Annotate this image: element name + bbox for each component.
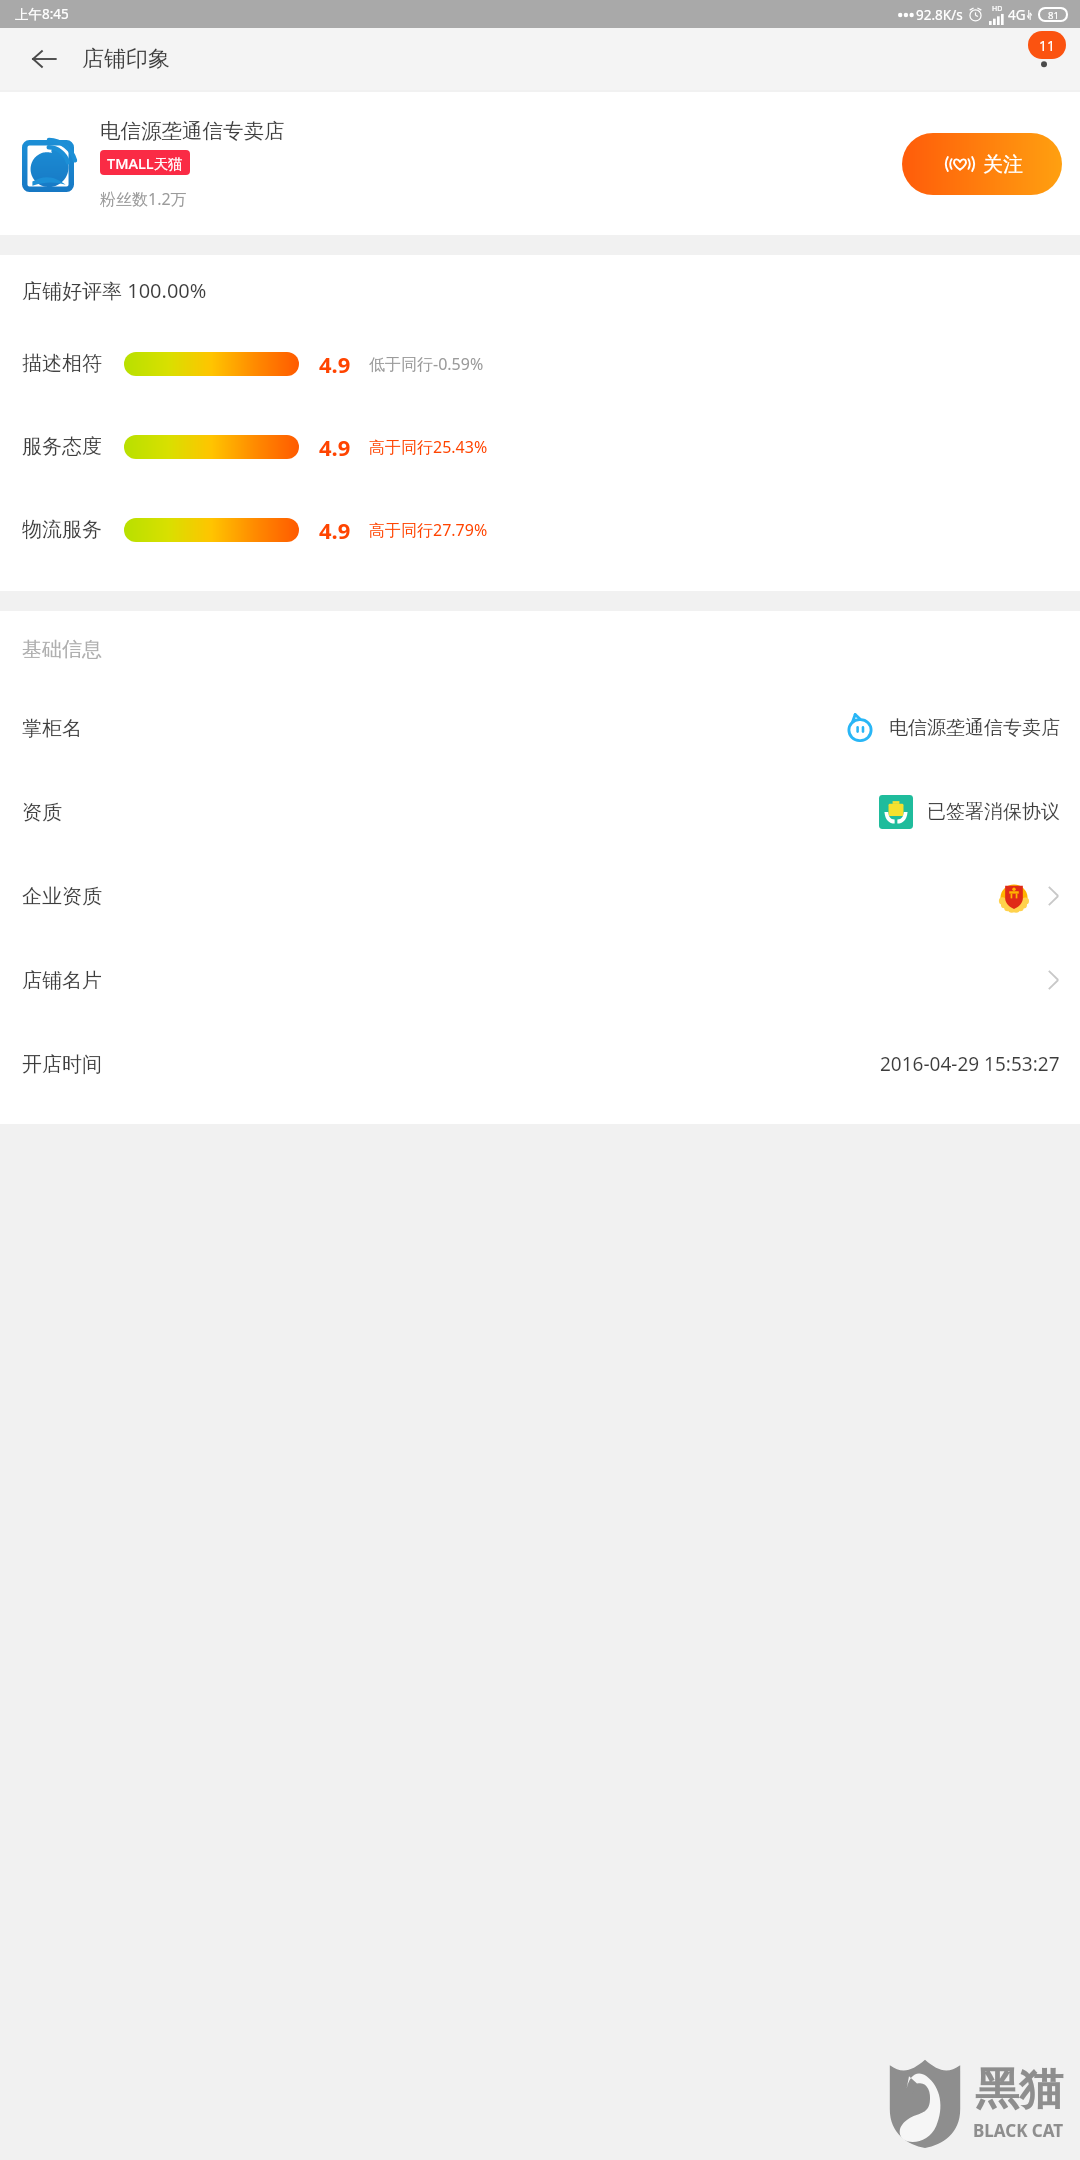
button[interactable]: 企业资质 <box>0 854 1080 938</box>
staticText: 店铺印象 <box>82 45 170 73</box>
staticText: BLACK CAT <box>973 2119 1064 2142</box>
staticText: 店铺好评率 100.00% <box>22 277 207 304</box>
staticText: TMALL天猫 <box>107 153 183 173</box>
staticText: 黑猫 <box>975 2062 1063 2117</box>
staticText: 4.9 <box>319 432 351 462</box>
staticText: 店铺名片 <box>22 968 102 993</box>
staticText: 4.9 <box>319 515 351 545</box>
staticText: 掌柜名 <box>22 716 82 741</box>
staticText: 物流服务 <box>22 517 102 542</box>
staticText: 描述相符 <box>22 351 102 376</box>
button[interactable]: 店铺名片 <box>0 938 1080 1022</box>
staticText: 4.9 <box>319 349 351 379</box>
button[interactable]: 描述相符 <box>0 322 1080 405</box>
button[interactable]: 关注 <box>902 133 1062 195</box>
staticText: 11 <box>1039 36 1056 55</box>
button[interactable]: 掌柜名 <box>0 686 1080 770</box>
staticText: 粉丝数1.2万 <box>100 188 187 210</box>
button[interactable]: 资质 <box>0 770 1080 854</box>
staticText: 已签署消保协议 <box>927 800 1060 824</box>
staticText: 高于同行25.43% <box>369 436 488 458</box>
staticText: 企业资质 <box>22 884 102 909</box>
button[interactable]: 物流服务 <box>0 488 1080 571</box>
staticText: 服务态度 <box>22 434 102 459</box>
staticText: 电信源垄通信专卖店 <box>100 118 285 144</box>
staticText: 高于同行27.79% <box>369 519 488 541</box>
staticText: HD <box>992 4 1003 14</box>
staticText: 资质 <box>22 800 62 825</box>
button[interactable]: More options <box>1018 33 1070 85</box>
staticText: 2016-04-29 15:53:27 <box>880 1051 1060 1077</box>
staticText: 上午8:45 <box>15 5 69 23</box>
staticText: 4G <box>1008 6 1026 24</box>
button[interactable]: 服务态度 <box>0 405 1080 488</box>
staticText: 低于同行-0.59% <box>369 353 484 375</box>
staticText: 电信源垄通信专卖店 <box>889 716 1060 740</box>
staticText: 基础信息 <box>22 637 102 662</box>
staticText: 92.8K/s <box>916 6 963 24</box>
staticText: 关注 <box>983 152 1023 177</box>
button[interactable]: 开店时间 <box>0 1022 1080 1106</box>
staticText: 81 <box>1048 9 1059 20</box>
staticText: 开店时间 <box>22 1052 102 1077</box>
button[interactable]: Back <box>22 37 66 81</box>
